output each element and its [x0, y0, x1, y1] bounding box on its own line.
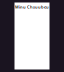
- staticText: Minu Chsuubeu: [15, 4, 49, 10]
